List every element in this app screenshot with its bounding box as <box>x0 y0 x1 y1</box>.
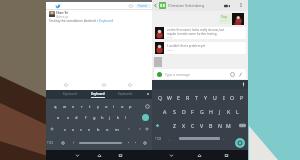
button[interactable]: Attach <box>238 72 243 77</box>
button[interactable]: Symbols <box>145 127 149 131</box>
button[interactable]: Keyboards <box>118 92 133 96</box>
button[interactable]: Tweet <box>138 4 147 8</box>
button[interactable]: n <box>103 126 112 133</box>
button[interactable]: X <box>179 121 188 129</box>
button[interactable]: y <box>94 103 102 110</box>
button[interactable]: Voice input <box>143 141 147 145</box>
button[interactable]: d <box>72 114 81 121</box>
button[interactable]: D <box>179 107 188 115</box>
button[interactable]: Q <box>155 93 165 101</box>
button[interactable]: ?123 <box>155 137 162 141</box>
button[interactable]: i <box>110 103 118 110</box>
button[interactable]: v <box>85 126 94 133</box>
button[interactable]: I <box>219 93 228 101</box>
staticText: @shen_ye <box>56 15 69 19</box>
button[interactable]: P <box>237 93 246 101</box>
button[interactable]: u <box>102 103 110 110</box>
button[interactable]: a <box>54 114 63 121</box>
button[interactable]: o <box>118 103 126 110</box>
staticText: K <box>227 108 231 115</box>
button[interactable]: Home <box>97 153 102 158</box>
button[interactable]: More options <box>239 3 243 7</box>
button[interactable]: l <box>122 114 130 121</box>
button[interactable]: t <box>86 103 94 110</box>
button[interactable]: p <box>126 103 134 110</box>
button[interactable]: Back <box>169 153 174 158</box>
button[interactable]: J <box>215 107 224 115</box>
button[interactable]: U <box>210 93 219 101</box>
button[interactable]: Key board <box>63 92 77 96</box>
button[interactable]: x <box>69 126 77 133</box>
button[interactable]: W <box>165 93 174 101</box>
button[interactable]: A <box>160 107 170 115</box>
button[interactable]: Yup <box>219 14 232 24</box>
button[interactable]: F <box>188 107 197 115</box>
button[interactable]: I couldn't find a problem yet <box>164 42 246 54</box>
button[interactable]: V <box>197 121 206 129</box>
button[interactable]: q <box>51 103 60 110</box>
staticText: m <box>115 127 119 132</box>
button[interactable]: Backspace <box>239 123 246 128</box>
staticText: . <box>223 137 224 141</box>
button[interactable]: S <box>170 107 179 115</box>
button[interactable]: z <box>61 126 69 133</box>
button[interactable]: b <box>94 126 103 133</box>
button[interactable]: Recents <box>118 153 123 158</box>
button[interactable]: H <box>206 107 215 115</box>
button[interactable]: Y <box>201 93 210 101</box>
button[interactable]: Backspace <box>145 104 150 109</box>
button[interactable]: e <box>69 103 78 110</box>
button[interactable]: ?123 <box>47 141 54 145</box>
button[interactable]: Shift <box>50 127 54 131</box>
button[interactable]: B <box>206 121 215 129</box>
button[interactable]: G <box>197 107 206 115</box>
button[interactable]: R <box>183 93 192 101</box>
button[interactable]: Emoji <box>230 72 235 77</box>
button[interactable]: Video call <box>224 3 230 9</box>
button[interactable]: h <box>98 114 106 121</box>
button[interactable]: f <box>81 114 90 121</box>
button[interactable]: K <box>224 107 233 115</box>
button[interactable]: Back <box>153 3 158 8</box>
button[interactable]: k <box>114 114 122 121</box>
button[interactable]: Emoji <box>61 141 65 145</box>
button[interactable]: Recents <box>224 153 229 158</box>
button[interactable]: Settings <box>146 92 150 96</box>
button[interactable]: Shift <box>155 123 160 128</box>
staticText: c <box>80 127 82 132</box>
button[interactable]: E <box>174 93 183 101</box>
button[interactable]: w <box>60 103 69 110</box>
button[interactable]: Add photo <box>64 83 68 87</box>
button[interactable]: Voice input <box>241 82 246 87</box>
button[interactable]: Add photo <box>129 4 133 8</box>
button[interactable]: Twitter <box>55 3 61 9</box>
button[interactable]: Space <box>79 142 122 144</box>
button[interactable]: / <box>73 140 75 145</box>
staticText: 12:25 <box>167 36 173 39</box>
button[interactable]: s <box>63 114 72 121</box>
button[interactable]: c <box>77 126 85 133</box>
button[interactable]: C <box>188 121 197 129</box>
button[interactable]: Home <box>197 153 202 158</box>
button[interactable]: on the first view it looks really do now… <box>164 27 246 39</box>
button[interactable]: N <box>215 121 224 129</box>
button[interactable]: Add location <box>128 83 132 87</box>
button[interactable]: Send <box>235 138 245 148</box>
button[interactable]: More options <box>148 4 152 8</box>
button[interactable]: Keyboard <box>91 92 105 96</box>
button[interactable]: L <box>233 107 242 115</box>
button[interactable]: T <box>192 93 201 101</box>
button[interactable]: Back <box>75 153 80 158</box>
button[interactable]: M <box>224 121 233 129</box>
button[interactable]: m <box>112 126 121 133</box>
button[interactable]: Space <box>179 137 220 140</box>
staticText: k <box>117 115 120 120</box>
button[interactable]: r <box>78 103 86 110</box>
button[interactable]: Enter <box>142 114 149 121</box>
button[interactable]: Add GIF <box>102 83 106 87</box>
button[interactable]: Z <box>169 121 179 129</box>
button[interactable]: O <box>228 93 237 101</box>
button[interactable]: g <box>90 114 98 121</box>
staticText: A <box>163 108 167 115</box>
button[interactable]: j <box>106 114 114 121</box>
